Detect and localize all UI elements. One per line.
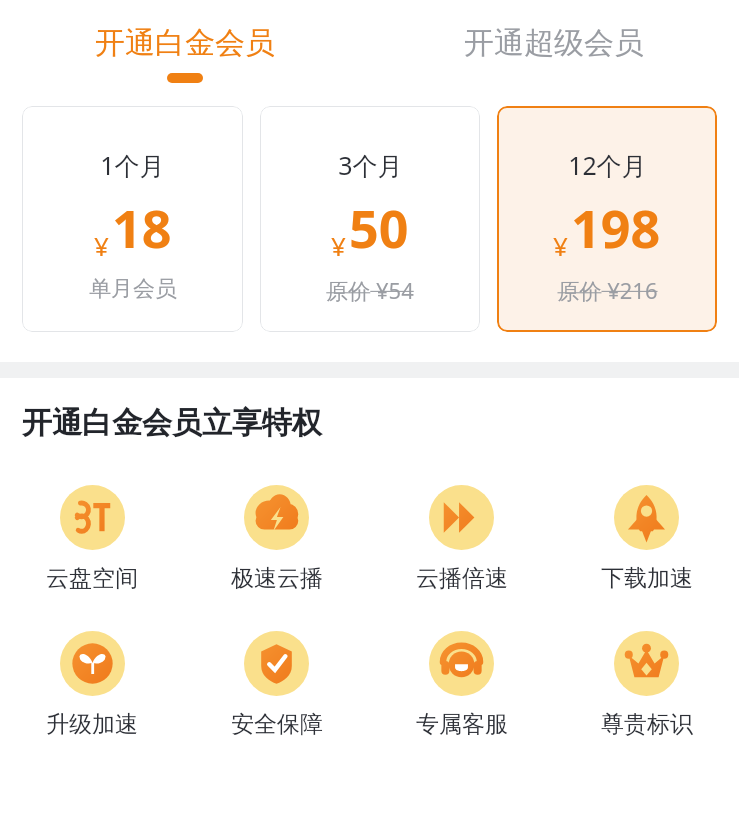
button[interactable]: 1个月 xyxy=(22,106,243,332)
staticText: 12个月 xyxy=(568,148,647,182)
staticText: 3个月 xyxy=(338,148,403,182)
staticText: 198 xyxy=(571,192,661,263)
button[interactable]: 升级加速 xyxy=(0,631,184,739)
other: 升级加速 xyxy=(60,631,125,696)
button[interactable]: 安全保障 xyxy=(184,631,369,739)
staticText: 1个月 xyxy=(100,148,165,182)
other: 云盘空间 xyxy=(60,485,125,550)
button[interactable]: 专属客服 xyxy=(369,631,554,739)
staticText: 50 xyxy=(349,192,409,263)
staticText: ¥ xyxy=(331,228,346,263)
staticText: 云播倍速 xyxy=(416,564,508,593)
staticText: 升级加速 xyxy=(46,710,138,739)
staticText: 安全保障 xyxy=(231,710,323,739)
staticText: 尊贵标识 xyxy=(601,710,693,739)
staticText: ¥ xyxy=(553,228,568,263)
button[interactable]: 极速云播 xyxy=(184,485,369,593)
button[interactable]: 云盘空间 xyxy=(0,485,184,593)
button[interactable]: 下载加速 xyxy=(554,485,739,593)
button[interactable]: 云播倍速 xyxy=(369,485,554,593)
staticText: 开通白金会员 xyxy=(95,24,275,62)
staticText: 单月会员 xyxy=(89,275,177,303)
staticText: 云盘空间 xyxy=(46,564,138,593)
other: 极速云播 xyxy=(244,485,309,550)
staticText: ¥ xyxy=(94,228,109,263)
staticText: 开通白金会员立享特权 xyxy=(22,404,322,442)
other: 专属客服 xyxy=(429,631,494,696)
staticText: 原价 ¥216 xyxy=(557,275,658,305)
other: 安全保障 xyxy=(244,631,309,696)
button[interactable]: 开通白金会员 xyxy=(0,0,369,83)
other: 云播倍速 xyxy=(429,485,494,550)
button[interactable]: 尊贵标识 xyxy=(554,631,739,739)
other: 尊贵标识 xyxy=(614,631,679,696)
staticText: 下载加速 xyxy=(601,564,693,593)
staticText: 18 xyxy=(112,192,172,263)
staticText: 原价 ¥54 xyxy=(326,275,414,305)
other: 下载加速 xyxy=(614,485,679,550)
button[interactable]: 12个月 xyxy=(497,106,717,332)
staticText: 专属客服 xyxy=(416,710,508,739)
button[interactable]: 开通超级会员 xyxy=(369,0,739,62)
staticText: 极速云播 xyxy=(231,564,323,593)
button[interactable]: 3个月 xyxy=(260,106,480,332)
staticText: 开通超级会员 xyxy=(464,24,644,62)
